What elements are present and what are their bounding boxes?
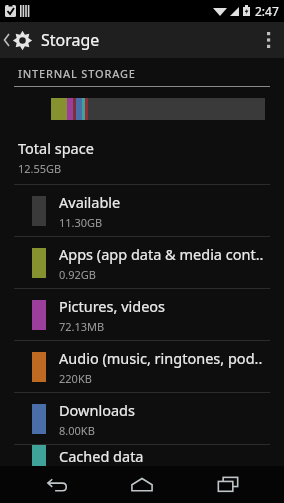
button[interactable]: Total space <box>0 136 284 184</box>
button[interactable]: Recent apps <box>198 466 258 503</box>
staticText: 11.30GB <box>59 215 103 230</box>
staticText: 72.13MB <box>59 319 105 334</box>
staticText: Available <box>59 192 121 212</box>
button[interactable]: Apps (app data & media cont.. <box>0 237 284 288</box>
staticText: Apps (app data & media cont.. <box>59 244 264 264</box>
staticText: Pictures, videos <box>59 296 166 316</box>
staticText: Total space <box>18 138 94 158</box>
staticText: Storage <box>41 29 100 51</box>
button[interactable]: More options <box>254 22 284 58</box>
staticText: 8.00KB <box>59 423 95 438</box>
staticText: INTERNAL STORAGE <box>18 66 136 81</box>
button[interactable]: Navigate up <box>0 22 35 58</box>
button[interactable]: Cached data <box>0 445 284 466</box>
button[interactable]: Back <box>26 466 86 503</box>
button[interactable]: Audio (music, ringtones, pod.. <box>0 341 284 392</box>
staticText: 220KB <box>59 371 92 386</box>
button[interactable]: Home <box>112 466 172 503</box>
button[interactable]: Downloads <box>0 393 284 444</box>
button[interactable]: Pictures, videos <box>0 289 284 340</box>
staticText: 2:47 <box>255 3 279 19</box>
staticText: Downloads <box>59 400 135 420</box>
staticText: 0.92GB <box>59 267 96 282</box>
staticText: 12.55GB <box>18 161 62 176</box>
staticText: Audio (music, ringtones, pod.. <box>59 348 263 368</box>
staticText: Cached data <box>59 446 144 466</box>
button[interactable]: Available <box>0 185 284 236</box>
